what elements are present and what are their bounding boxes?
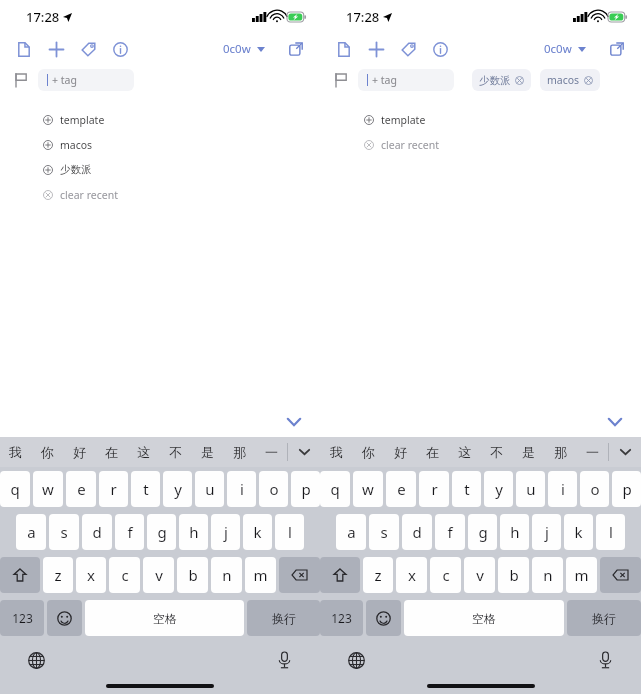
button[interactable]: 是 bbox=[512, 437, 544, 467]
button[interactable]: template bbox=[355, 107, 543, 132]
button[interactable]: x bbox=[76, 557, 106, 593]
button[interactable]: More candidates bbox=[609, 437, 641, 467]
button[interactable]: 你 bbox=[31, 437, 63, 467]
button[interactable]: h bbox=[500, 514, 529, 550]
button[interactable]: Dictation bbox=[591, 646, 619, 674]
button[interactable]: z bbox=[363, 557, 393, 593]
button[interactable]: New note bbox=[8, 34, 40, 64]
button[interactable]: p bbox=[291, 471, 320, 507]
button[interactable]: o bbox=[259, 471, 288, 507]
button[interactable]: 这 bbox=[448, 437, 480, 467]
button[interactable]: Shift bbox=[0, 557, 40, 593]
button[interactable]: v bbox=[143, 557, 174, 593]
button[interactable]: 那 bbox=[223, 437, 255, 467]
button[interactable]: Expand bbox=[280, 34, 312, 64]
button[interactable]: Switch keyboard bbox=[22, 646, 50, 674]
button[interactable]: 那 bbox=[544, 437, 576, 467]
button[interactable]: s bbox=[369, 514, 399, 550]
button[interactable]: Switch keyboard bbox=[342, 646, 370, 674]
button[interactable]: u bbox=[516, 471, 545, 507]
button[interactable]: 0c0w bbox=[220, 37, 268, 61]
button[interactable]: b bbox=[498, 557, 529, 593]
button[interactable]: n bbox=[211, 557, 242, 593]
button[interactable]: 换行 bbox=[567, 600, 641, 636]
button[interactable]: Backspace bbox=[279, 557, 320, 593]
button[interactable]: + tag bbox=[358, 69, 454, 91]
button[interactable]: 我 bbox=[0, 437, 31, 467]
button[interactable]: Flag bbox=[330, 69, 352, 91]
button[interactable]: j bbox=[532, 514, 561, 550]
button[interactable]: 空格 bbox=[85, 600, 244, 636]
button[interactable]: Flag bbox=[10, 69, 32, 91]
button[interactable]: d bbox=[82, 514, 112, 550]
button[interactable]: 一 bbox=[576, 437, 608, 467]
button[interactable]: e bbox=[386, 471, 416, 507]
button[interactable]: l bbox=[275, 514, 304, 550]
button[interactable]: clear recent bbox=[355, 132, 543, 157]
button[interactable]: n bbox=[532, 557, 563, 593]
button[interactable]: s bbox=[49, 514, 79, 550]
button[interactable]: Tag bbox=[392, 34, 424, 64]
button[interactable]: g bbox=[147, 514, 176, 550]
button[interactable]: q bbox=[320, 471, 350, 507]
button[interactable]: 这 bbox=[127, 437, 159, 467]
button[interactable]: Emoji bbox=[47, 600, 82, 636]
button[interactable]: t bbox=[131, 471, 160, 507]
button[interactable]: g bbox=[468, 514, 497, 550]
button[interactable]: m bbox=[566, 557, 597, 593]
button[interactable]: c bbox=[430, 557, 461, 593]
button[interactable]: Dictation bbox=[270, 646, 298, 674]
button[interactable]: Info bbox=[104, 34, 136, 64]
button[interactable]: + tag bbox=[38, 69, 134, 91]
button[interactable]: r bbox=[99, 471, 128, 507]
button[interactable]: 123 bbox=[0, 600, 44, 636]
button[interactable]: t bbox=[452, 471, 481, 507]
button[interactable]: j bbox=[211, 514, 240, 550]
button[interactable]: Expand bbox=[601, 34, 633, 64]
button[interactable]: More candidates bbox=[288, 437, 320, 467]
button[interactable]: y bbox=[163, 471, 192, 507]
button[interactable]: m bbox=[245, 557, 276, 593]
button[interactable]: z bbox=[43, 557, 73, 593]
button[interactable]: Emoji bbox=[366, 600, 401, 636]
button[interactable]: 换行 bbox=[247, 600, 320, 636]
button[interactable]: y bbox=[484, 471, 513, 507]
button[interactable]: b bbox=[177, 557, 208, 593]
button[interactable]: x bbox=[396, 557, 427, 593]
button[interactable]: 123 bbox=[320, 600, 363, 636]
button[interactable]: 我 bbox=[320, 437, 352, 467]
button[interactable]: 好 bbox=[384, 437, 416, 467]
button[interactable]: c bbox=[109, 557, 140, 593]
button[interactable]: clear recent bbox=[34, 182, 221, 207]
button[interactable]: Collapse bbox=[282, 410, 306, 434]
button[interactable]: 空格 bbox=[404, 600, 564, 636]
button[interactable]: k bbox=[243, 514, 272, 550]
button[interactable]: f bbox=[115, 514, 144, 550]
button[interactable]: Backspace bbox=[600, 557, 641, 593]
button[interactable]: 你 bbox=[352, 437, 384, 467]
button[interactable]: 不 bbox=[480, 437, 512, 467]
button[interactable]: 在 bbox=[95, 437, 127, 467]
button[interactable]: k bbox=[564, 514, 593, 550]
button[interactable]: template bbox=[34, 107, 221, 132]
button[interactable]: f bbox=[435, 514, 465, 550]
button[interactable]: New note bbox=[328, 34, 360, 64]
button[interactable]: v bbox=[464, 557, 495, 593]
button[interactable]: 一 bbox=[255, 437, 287, 467]
button[interactable]: p bbox=[612, 471, 641, 507]
button[interactable]: 0c0w bbox=[541, 37, 589, 61]
button[interactable]: macos bbox=[540, 69, 600, 91]
button[interactable]: q bbox=[0, 471, 30, 507]
button[interactable]: l bbox=[596, 514, 625, 550]
button[interactable]: 是 bbox=[191, 437, 223, 467]
button[interactable]: a bbox=[16, 514, 46, 550]
button[interactable]: r bbox=[419, 471, 449, 507]
button[interactable]: Collapse bbox=[603, 410, 627, 434]
button[interactable]: a bbox=[336, 514, 366, 550]
button[interactable]: Add bbox=[40, 34, 72, 64]
button[interactable]: o bbox=[580, 471, 609, 507]
button[interactable]: d bbox=[402, 514, 432, 550]
button[interactable]: u bbox=[195, 471, 224, 507]
button[interactable]: 不 bbox=[159, 437, 191, 467]
button[interactable]: Info bbox=[424, 34, 456, 64]
